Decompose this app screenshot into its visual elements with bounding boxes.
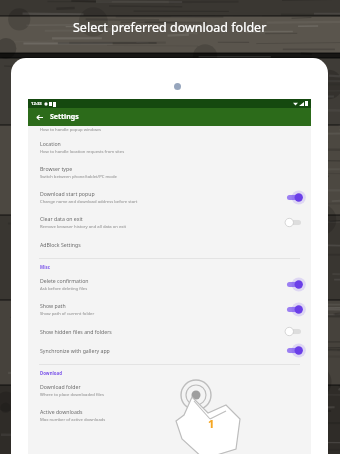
staticText: How to handle location requests from sit… [40,149,125,155]
button[interactable]: Download start popup [28,185,311,210]
button[interactable]: Synchronize with gallery app [28,341,311,360]
staticText: Select preferred download folder [73,19,267,36]
staticText: Download [40,370,62,376]
staticText: Max number of active downloads [40,417,106,423]
staticText: Settings [50,112,79,122]
button[interactable]: Delete confirmation [28,272,311,297]
button[interactable]: AdBlock Settings [28,235,311,254]
staticText: Browser type [40,165,73,172]
staticText: Misc [40,264,50,270]
button[interactable]: Location [28,135,311,160]
staticText: Delete confirmation [40,277,89,284]
button[interactable]: Back [33,111,45,123]
staticText: Where to place downloaded files [40,392,104,398]
button[interactable]: Download folder [28,378,311,403]
button[interactable]: Switch off [285,326,303,337]
staticText: Show hidden files and folders [40,328,112,335]
staticText: Show path of current folder [40,311,95,317]
button[interactable]: Show path [28,297,311,322]
button[interactable]: Switch on [285,345,303,356]
staticText: How to handle popup windows [40,127,101,133]
button[interactable]: Switch on [285,279,303,290]
button[interactable]: Clear data on exit [28,210,311,235]
button[interactable]: Active downloads [28,403,311,428]
staticText: Clear data on exit [40,215,83,222]
staticText: Ask before deleting files [40,286,88,292]
button[interactable]: Browser type [28,160,311,185]
staticText: Switch between phone/tablet/PC mode [40,174,117,180]
staticText: Download start popup [40,190,95,197]
staticText: Active downloads [40,408,83,415]
button[interactable]: Switch off [285,217,303,228]
staticText: 1 [208,416,215,431]
staticText: Synchronize with gallery app [40,347,110,354]
button[interactable]: Show hidden files and folders [28,322,311,341]
staticText: Download folder [40,383,81,390]
button[interactable]: Switch on [285,192,303,203]
staticText: Change name and download address before … [40,199,138,205]
staticText: AdBlock Settings [40,241,81,248]
staticText: 12:33 [31,101,42,107]
staticText: Remove browser history and all data on e… [40,224,127,230]
staticText: Location [40,140,61,147]
staticText: Show path [40,302,66,309]
button[interactable]: Switch on [285,304,303,315]
